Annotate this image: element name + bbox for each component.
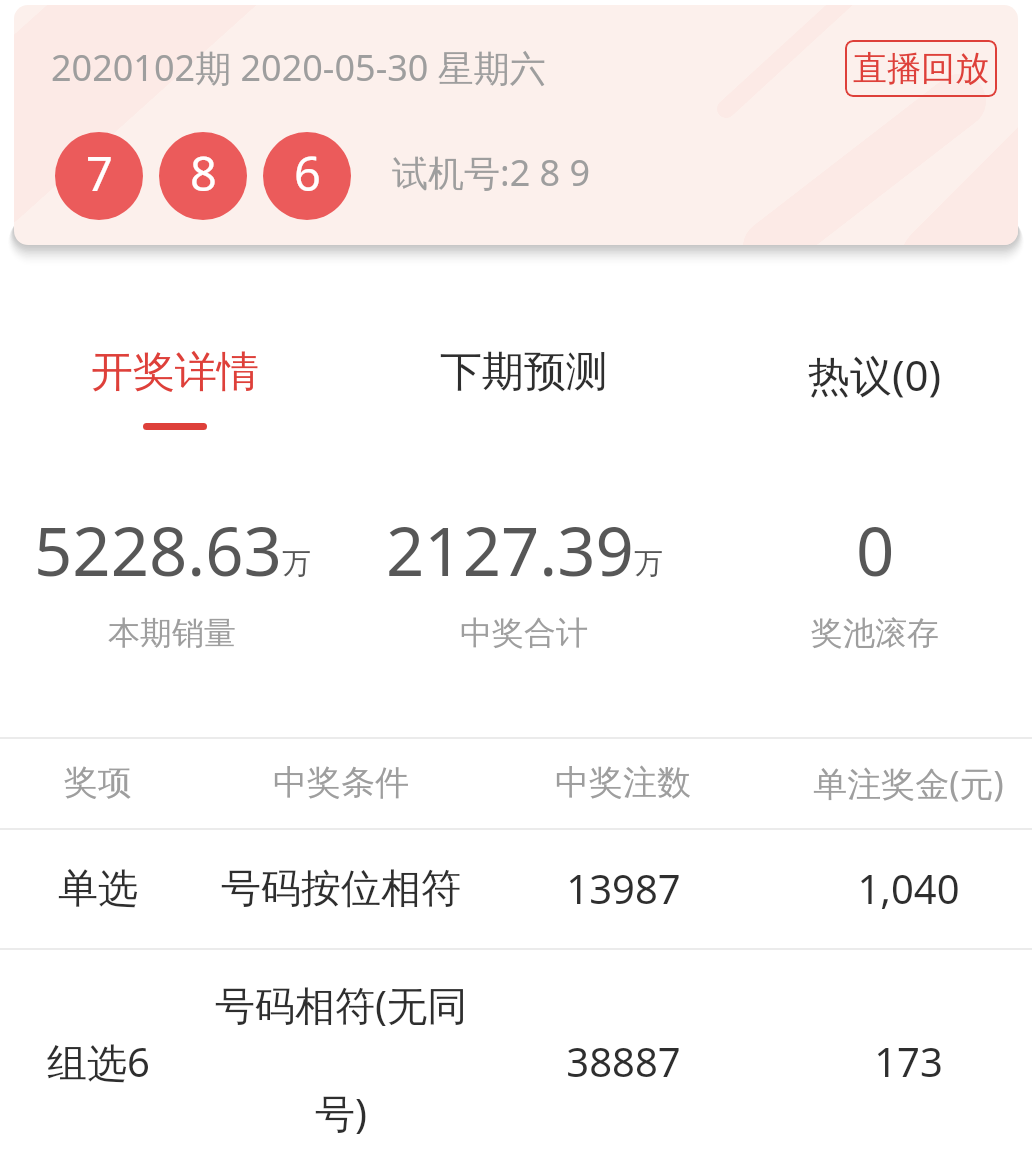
staticText: 单选	[58, 863, 138, 913]
staticText: 173	[874, 1034, 943, 1088]
staticText: 中奖合计	[460, 613, 588, 653]
staticText: 6	[294, 141, 321, 205]
staticText: 热议(0)	[808, 346, 942, 403]
staticText: 0	[856, 504, 895, 595]
staticText: 试机号:2 8 9	[392, 148, 591, 197]
staticText: 中奖注数	[555, 761, 691, 804]
staticText: 中奖条件	[273, 761, 409, 804]
staticText: 1,040	[857, 861, 960, 915]
staticText: 下期预测	[440, 346, 608, 399]
staticText: 直播回放	[853, 47, 989, 90]
staticText: 单注奖金(元)	[813, 760, 1004, 806]
staticText: 7	[86, 141, 113, 205]
staticText: 8	[190, 141, 217, 205]
staticText: 5228.63	[34, 504, 282, 595]
staticText: 2020102期 2020-05-30 星期六	[51, 43, 546, 92]
staticText: 13987	[566, 861, 681, 915]
button[interactable]: 开奖详情	[25, 338, 325, 443]
staticText: 组选6	[47, 1034, 150, 1089]
staticText: 号码相符(无同号)	[195, 977, 487, 1140]
staticText: 开奖详情	[91, 346, 259, 399]
staticText: 本期销量	[108, 613, 236, 653]
staticText: 奖项	[64, 761, 132, 804]
button[interactable]: 直播回放	[845, 40, 997, 97]
staticText: 号码按位相符	[221, 863, 461, 913]
button[interactable]: 热议(0)	[725, 338, 1025, 443]
staticText: 2127.39	[386, 504, 634, 595]
button[interactable]: 下期预测	[374, 338, 674, 443]
staticText: 奖池滚存	[811, 613, 939, 653]
staticText: 万	[282, 545, 311, 582]
staticText: 万	[634, 545, 663, 582]
staticText: 38887	[566, 1034, 681, 1088]
button[interactable]: 2020102期开奖号码 7 8 6	[14, 5, 1018, 245]
